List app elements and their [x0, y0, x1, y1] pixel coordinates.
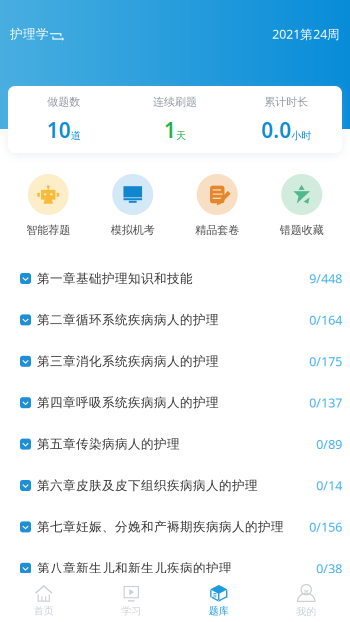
staticText: 我的	[296, 605, 316, 618]
button[interactable]: 错题收藏	[259, 174, 344, 237]
staticText: 2021第24周	[272, 25, 340, 43]
staticText: 错题收藏	[280, 223, 324, 237]
button[interactable]: 我的	[262, 584, 350, 618]
staticText: 第七章妊娠、分娩和产褥期疾病病人的护理	[37, 519, 284, 535]
button[interactable]: 第二章循环系统疾病病人的护理	[0, 299, 350, 341]
staticText: 模拟机考	[111, 223, 155, 237]
button[interactable]: 模拟机考	[90, 174, 175, 237]
staticText: 第八章新生儿和新生儿疾病的护理	[37, 560, 232, 576]
staticText: 精品套卷	[195, 223, 239, 237]
button[interactable]: 首页	[0, 585, 87, 617]
staticText: 做题数	[47, 95, 80, 109]
button[interactable]: 第三章消化系统疾病病人的护理	[0, 341, 350, 382]
button[interactable]: 精品套卷	[175, 174, 259, 237]
button[interactable]: 学习	[87, 585, 175, 617]
staticText: 0/89	[316, 436, 342, 453]
staticText: 0/137	[309, 394, 342, 411]
staticText: 第三章消化系统疾病病人的护理	[37, 353, 219, 369]
staticText: 0.0	[261, 116, 291, 144]
staticText: 学习	[121, 605, 141, 617]
staticText: 第二章循环系统疾病病人的护理	[37, 312, 219, 328]
staticText: 首页	[34, 605, 54, 617]
staticText: 累计时长	[264, 95, 308, 109]
button[interactable]: 护理学	[10, 26, 64, 42]
staticText: 0/156	[309, 518, 342, 535]
staticText: 护理学	[10, 26, 49, 42]
staticText: 第六章皮肤及皮下组织疾病病人的护理	[37, 478, 258, 493]
staticText: 题库	[209, 605, 229, 617]
staticText: 10	[47, 116, 71, 144]
button[interactable]: 第六章皮肤及皮下组织疾病病人的护理	[0, 465, 350, 506]
staticText: 智能荐题	[26, 223, 70, 237]
staticText: 连续刷题	[153, 95, 197, 109]
staticText: 0/164	[309, 311, 342, 328]
button[interactable]: 第七章妊娠、分娩和产褥期疾病病人的护理	[0, 506, 350, 548]
staticText: 0/38	[316, 560, 342, 577]
staticText: 第五章传染病病人的护理	[37, 436, 180, 452]
button[interactable]: 题库	[175, 585, 262, 617]
staticText: 道	[71, 129, 81, 142]
staticText: 9/448	[309, 270, 342, 287]
staticText: 0/14	[316, 477, 342, 494]
button[interactable]: 第一章基础护理知识和技能	[0, 258, 350, 299]
button[interactable]: 第八章新生儿和新生儿疾病的护理	[0, 548, 350, 589]
button[interactable]: 第五章传染病病人的护理	[0, 423, 350, 465]
staticText: 小时	[291, 129, 311, 142]
button[interactable]: 第四章呼吸系统疾病病人的护理	[0, 382, 350, 423]
staticText: 天	[176, 129, 186, 142]
staticText: 第四章呼吸系统疾病病人的护理	[37, 395, 219, 411]
staticText: 0/175	[309, 353, 342, 370]
staticText: 第一章基础护理知识和技能	[37, 271, 193, 286]
button[interactable]: 智能荐题	[6, 174, 90, 237]
staticText: 1	[164, 116, 176, 144]
